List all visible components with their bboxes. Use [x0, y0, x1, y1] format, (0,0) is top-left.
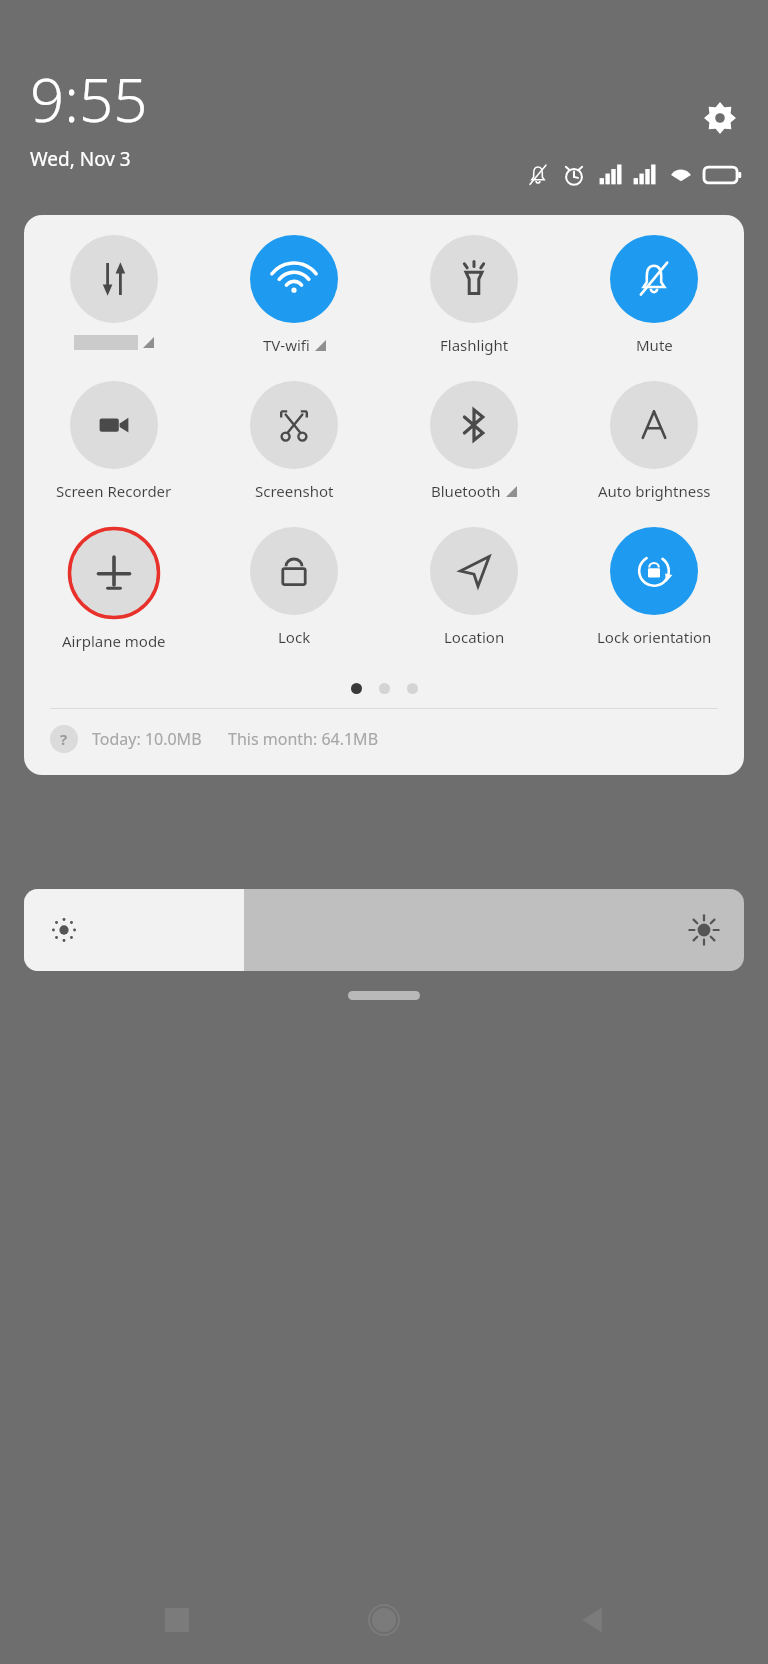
staticText: Screenshot: [255, 481, 334, 501]
staticText: Today: 10.0MB: [92, 728, 202, 750]
staticText: TV-wifi: [263, 335, 310, 355]
button[interactable]: Mute: [564, 235, 744, 355]
button[interactable]: Lock: [204, 527, 384, 647]
button[interactable]: Home: [353, 1589, 415, 1651]
button[interactable]: Flashlight: [384, 235, 564, 355]
button[interactable]: [24, 889, 744, 971]
button[interactable]: [24, 235, 204, 350]
button[interactable]: Lock orientation: [564, 527, 744, 647]
button[interactable]: Settings: [698, 96, 742, 140]
button[interactable]: Location: [384, 527, 564, 647]
staticText: Auto brightness: [598, 481, 711, 501]
button[interactable]: Recents: [146, 1589, 208, 1651]
staticText: Lock: [278, 627, 311, 647]
button[interactable]: Airplane mode: [24, 527, 204, 651]
staticText: Airplane mode: [62, 631, 166, 651]
staticText: Location: [444, 627, 505, 647]
button[interactable]: TV-wifi: [204, 235, 384, 355]
staticText: Lock orientation: [597, 627, 712, 647]
button[interactable]: Bluetooth: [384, 381, 564, 501]
staticText: Bluetooth: [431, 481, 501, 501]
button[interactable]: Auto brightness: [564, 381, 744, 501]
staticText: ?: [60, 729, 68, 749]
staticText: This month: 64.1MB: [228, 728, 379, 750]
button[interactable]: Back: [561, 1589, 623, 1651]
staticText: 9:55: [30, 58, 148, 140]
staticText: Mute: [636, 335, 673, 355]
staticText: Screen Recorder: [56, 481, 172, 501]
button[interactable]: Screenshot: [204, 381, 384, 501]
staticText: Flashlight: [440, 335, 509, 355]
button[interactable]: ?: [50, 725, 744, 753]
staticText: Wed, Nov 3: [30, 146, 131, 172]
button[interactable]: Screen Recorder: [24, 381, 204, 501]
